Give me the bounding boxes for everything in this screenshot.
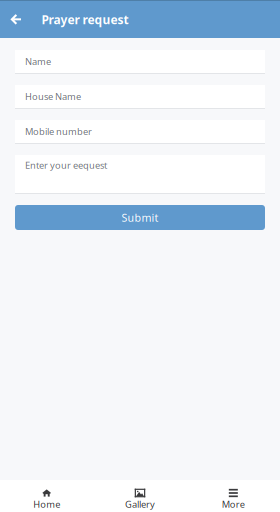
button[interactable]: Enter your eequest bbox=[15, 155, 265, 194]
button[interactable]: Home bbox=[0, 480, 93, 512]
staticText: More bbox=[222, 498, 245, 510]
button[interactable]: Name bbox=[15, 50, 265, 74]
staticText: Submit bbox=[121, 210, 158, 225]
staticText: Mobile number bbox=[25, 125, 92, 138]
button[interactable]: Back bbox=[0, 0, 41, 38]
button[interactable]: More bbox=[187, 480, 280, 512]
button[interactable]: Mobile number bbox=[15, 120, 265, 144]
button[interactable]: Submit bbox=[15, 205, 265, 230]
button[interactable]: Gallery bbox=[93, 480, 187, 512]
staticText: Gallery bbox=[125, 498, 155, 510]
staticText: Enter your eequest bbox=[25, 159, 107, 171]
staticText: Home bbox=[33, 498, 60, 510]
staticText: Prayer request bbox=[41, 11, 128, 27]
staticText: Name bbox=[25, 55, 51, 68]
button[interactable]: House Name bbox=[15, 85, 265, 109]
staticText: House Name bbox=[25, 90, 81, 103]
